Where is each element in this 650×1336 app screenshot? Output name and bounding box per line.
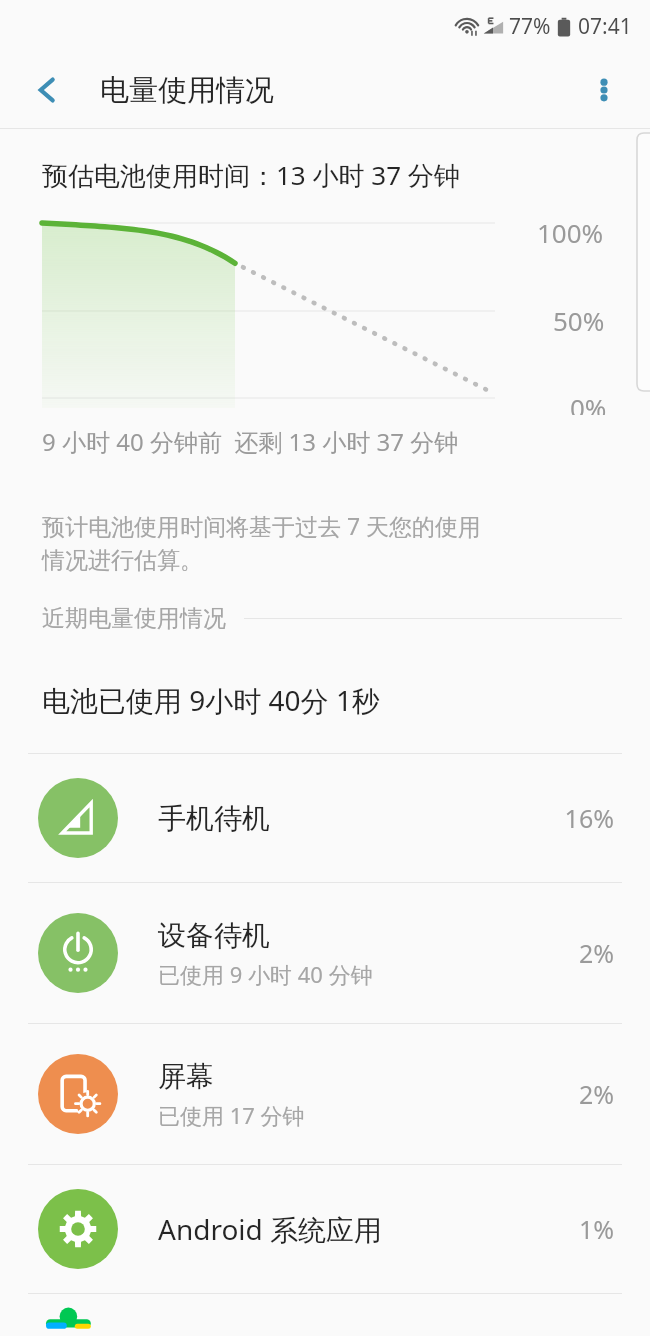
button[interactable]: 屏幕 <box>0 1024 650 1164</box>
staticText: 07:41 <box>578 12 632 41</box>
staticText: 设备待机 <box>158 918 270 953</box>
staticText: 预估电池使用时间：13 小时 37 分钟 <box>42 157 460 193</box>
button[interactable]: Android 系统应用 <box>0 1165 650 1293</box>
staticText: 2% <box>534 1077 614 1111</box>
button[interactable]: Back <box>22 64 74 116</box>
button[interactable] <box>0 1294 650 1336</box>
button[interactable]: 手机待机 <box>0 754 650 882</box>
staticText: 近期电量使用情况 <box>42 604 226 633</box>
staticText: 2% <box>534 936 614 970</box>
staticText: 屏幕 <box>158 1059 214 1094</box>
staticText: 0% <box>570 390 607 415</box>
staticText: 电量使用情况 <box>100 72 274 109</box>
staticText: 50% <box>553 303 605 338</box>
staticText: Android 系统应用 <box>158 1210 383 1248</box>
staticText: 100% <box>537 215 604 250</box>
staticText: 已使用 9 小时 40 分钟 <box>158 959 373 989</box>
button[interactable]: 设备待机 <box>0 883 650 1023</box>
staticText: 手机待机 <box>158 801 270 836</box>
staticText: 77% <box>509 12 551 41</box>
staticText: 16% <box>534 801 614 835</box>
button[interactable]: More options <box>578 64 630 116</box>
staticText: 电池已使用 9小时 40分 1秒 <box>42 681 380 719</box>
staticText: 1% <box>534 1212 614 1246</box>
staticText: 9 小时 40 分钟前 还剩 13 小时 37 分钟 <box>42 425 459 458</box>
staticText: 已使用 17 分钟 <box>158 1100 305 1130</box>
staticText: 预计电池使用时间将基于过去 7 天您的使用 情况进行估算。 <box>42 510 482 574</box>
